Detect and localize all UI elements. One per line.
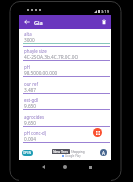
button[interactable]: our ref xyxy=(24,81,39,87)
button[interactable]: est-gdl xyxy=(24,97,39,103)
button[interactable]: alta xyxy=(24,31,32,37)
button[interactable]: Calculate xyxy=(93,128,102,137)
button[interactable]: phayle size xyxy=(24,48,47,54)
staticText: 3:19 xyxy=(101,9,109,14)
staticText: 9.650 xyxy=(24,103,36,109)
staticText: Gia xyxy=(34,19,43,27)
button[interactable]: Recents xyxy=(85,162,95,172)
staticText: 3000 xyxy=(24,37,35,43)
staticText: Google Play xyxy=(65,154,81,158)
button[interactable]: Delete xyxy=(98,16,110,28)
staticText: 0.004 xyxy=(24,136,36,142)
button[interactable]: Home xyxy=(60,162,70,172)
button[interactable]: pH xyxy=(24,64,30,70)
staticText: A xyxy=(102,150,105,156)
button[interactable]: pH conc-d) xyxy=(24,130,47,136)
staticText: OPEN xyxy=(23,151,32,155)
staticText: Shopping xyxy=(71,150,85,154)
button[interactable]: Back xyxy=(38,162,48,172)
button[interactable]: Back xyxy=(21,16,33,28)
staticText: 98.5000.00.000 xyxy=(24,70,58,76)
button[interactable]: agrocides xyxy=(24,114,45,120)
staticText: 9.650 xyxy=(24,120,36,126)
staticText: 3.487 xyxy=(24,87,36,93)
button[interactable]: OPEN xyxy=(22,150,33,156)
staticText: 4C-2SOA.3b.4C.7R.0C.0O xyxy=(24,54,79,60)
staticText: New Tees xyxy=(53,149,69,154)
